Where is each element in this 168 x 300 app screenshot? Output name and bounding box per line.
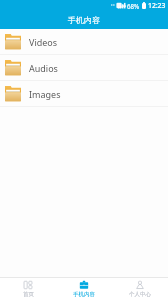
staticText: 个人中心 xyxy=(129,291,151,298)
staticText: Images xyxy=(29,88,61,100)
staticText: Audios xyxy=(29,62,58,74)
button[interactable]: Videos xyxy=(0,29,168,55)
button[interactable]: Images xyxy=(0,81,168,107)
button[interactable]: 个人中心 xyxy=(112,278,168,300)
staticText: Videos xyxy=(29,36,58,48)
button[interactable]: Audios xyxy=(0,55,168,81)
staticText: 手机内容 xyxy=(73,291,95,298)
button[interactable]: 手机内容 xyxy=(56,278,112,300)
staticText: 12:23 xyxy=(148,1,166,10)
staticText: 手机内容 xyxy=(68,15,100,25)
staticText: 首页 xyxy=(23,291,34,298)
staticText: 68% xyxy=(127,2,140,10)
button[interactable]: 首页 xyxy=(0,278,56,300)
